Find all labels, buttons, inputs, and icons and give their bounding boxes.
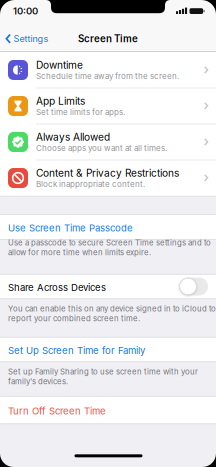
button[interactable]: Downtime xyxy=(0,52,216,88)
button[interactable]: Use Screen Time Passcode xyxy=(0,215,216,239)
staticText: Screen Time xyxy=(78,33,138,45)
staticText: Use Screen Time Passcode xyxy=(8,222,133,234)
staticText: allow for more time when limits expire. xyxy=(8,248,151,257)
staticText: report your combined screen time. xyxy=(8,314,140,323)
staticText: Schedule time away from the screen. xyxy=(36,71,179,81)
staticText: Set Up Screen Time for Family xyxy=(8,345,145,356)
button[interactable]: Turn Off Screen Time xyxy=(0,396,216,423)
staticText: Always Allowed xyxy=(36,131,110,143)
staticText: Block inappropriate content. xyxy=(36,179,145,189)
staticText: Choose apps you want at all times. xyxy=(36,143,167,153)
button[interactable]: Content & Privacy Restrictions xyxy=(0,160,216,196)
button[interactable]: App Limits xyxy=(0,88,216,124)
button[interactable]: Back to Settings xyxy=(5,33,48,44)
button[interactable]: Share Across Devices xyxy=(179,277,208,295)
staticText: Set up Family Sharing to use screen time… xyxy=(8,367,198,376)
staticText: Share Across Devices xyxy=(8,282,106,293)
button[interactable]: Set Up Screen Time for Family xyxy=(0,337,216,361)
staticText: Turn Off Screen Time xyxy=(8,405,106,417)
staticText: family's devices. xyxy=(8,377,68,386)
staticText: Set time limits for apps. xyxy=(36,107,125,117)
staticText: Use a passcode to secure Screen Time set… xyxy=(8,238,211,247)
button[interactable]: Always Allowed xyxy=(0,124,216,160)
staticText: Settings xyxy=(13,33,48,44)
staticText: App Limits xyxy=(36,95,85,107)
staticText: 10:00 xyxy=(13,5,38,17)
staticText: You can enable this on any device signed… xyxy=(8,304,216,313)
staticText: Downtime xyxy=(36,59,83,71)
staticText: Content & Privacy Restrictions xyxy=(36,167,179,179)
